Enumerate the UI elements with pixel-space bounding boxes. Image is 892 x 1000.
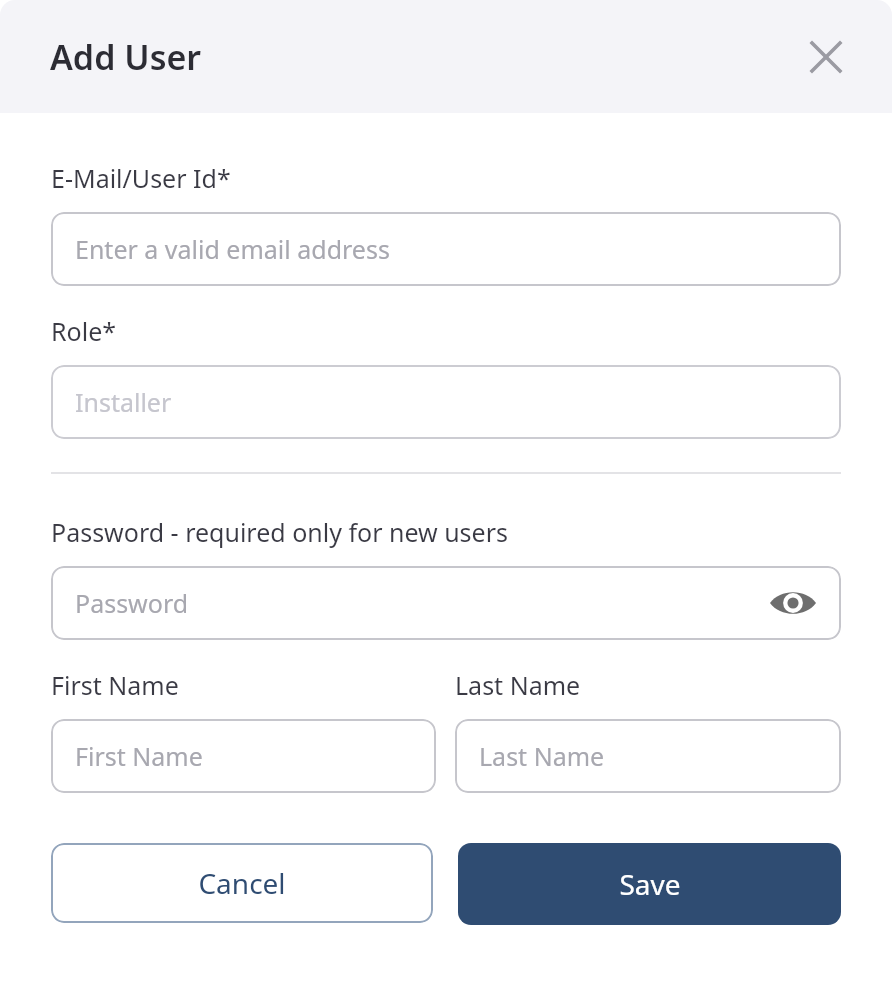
staticText: Installer	[75, 385, 172, 419]
staticText: Enter a valid email address	[75, 232, 390, 266]
staticText: Password - required only for new users	[51, 515, 508, 549]
staticText: Last Name	[479, 739, 605, 773]
staticText: Add User	[50, 34, 202, 80]
staticText: E-Mail/User Id*	[51, 161, 231, 195]
button[interactable]: Installer	[51, 365, 841, 439]
button[interactable]: Save	[458, 843, 841, 925]
button[interactable]: Close	[803, 34, 849, 80]
button[interactable]: Cancel	[51, 843, 433, 923]
button[interactable]: Password	[51, 566, 841, 640]
button[interactable]: Last Name	[455, 719, 841, 793]
staticText: Role*	[51, 314, 117, 348]
staticText: Save	[619, 865, 681, 903]
staticText: First Name	[75, 739, 203, 773]
button[interactable]: First Name	[51, 719, 436, 793]
button[interactable]: Enter a valid email address	[51, 212, 841, 286]
staticText: First Name	[51, 668, 179, 702]
staticText: Last Name	[455, 668, 581, 702]
button[interactable]: Show password	[767, 583, 819, 623]
staticText: Cancel	[198, 864, 286, 902]
staticText: Password	[75, 586, 189, 620]
